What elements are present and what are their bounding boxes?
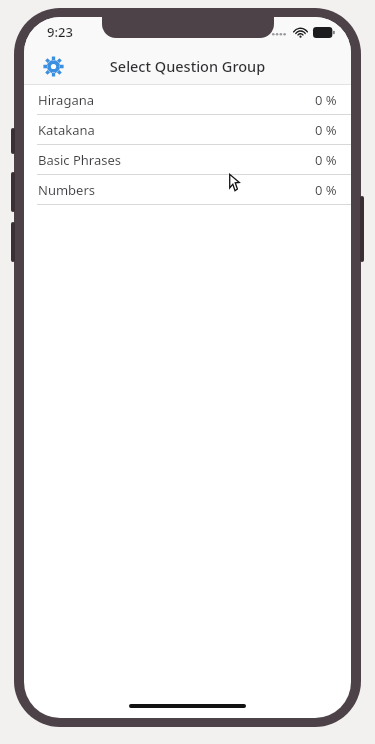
staticText: 0 % xyxy=(315,121,337,139)
staticText: Katakana xyxy=(38,121,95,139)
button[interactable]: Hiragana xyxy=(24,85,351,115)
button[interactable]: Settings xyxy=(38,51,68,81)
staticText: Numbers xyxy=(38,181,95,199)
staticText: 0 % xyxy=(315,181,337,199)
staticText: 0 % xyxy=(315,151,337,169)
staticText: 0 % xyxy=(315,91,337,109)
staticText: Select Question Group xyxy=(24,56,351,76)
staticText: 9:23 xyxy=(47,23,73,41)
staticText: Hiragana xyxy=(38,91,95,109)
button[interactable]: Basic Phrases xyxy=(24,145,351,175)
button[interactable]: Numbers xyxy=(24,175,351,205)
staticText: Basic Phrases xyxy=(38,151,122,169)
button[interactable]: Katakana xyxy=(24,115,351,145)
